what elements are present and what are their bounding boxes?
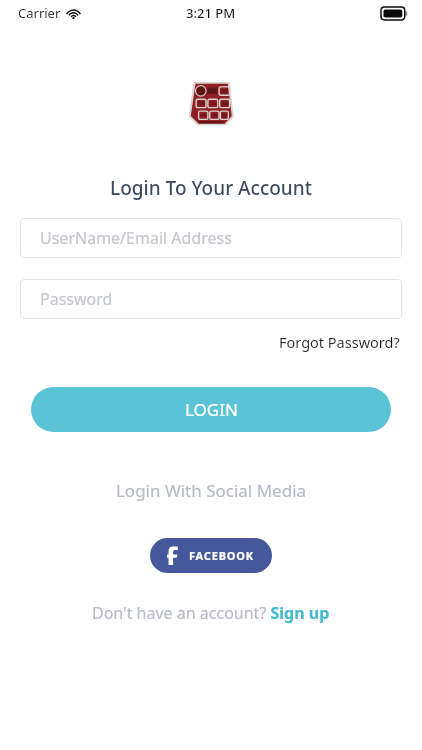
staticText: LOGIN [185,398,238,421]
staticText: Don't have an account? Sign up [92,602,330,624]
button[interactable]: Forgot Password? [277,329,402,355]
button[interactable]: Don't have an account? Sign up [86,598,336,628]
staticText: 3:21 PM [186,4,236,22]
button[interactable]: Password [20,279,402,319]
button[interactable]: LOGIN [31,387,391,432]
button[interactable]: FACEBOOK [150,538,272,573]
staticText: Password [40,288,113,310]
staticText: UserName/Email Address [40,227,232,249]
staticText: Login To Your Account [0,175,422,201]
staticText: Carrier [18,4,61,22]
staticText: Forgot Password? [279,332,400,352]
other: App logo [180,72,242,134]
staticText: FACEBOOK [189,548,254,563]
button[interactable]: UserName/Email Address [20,218,402,258]
staticText: Login With Social Media [0,479,422,502]
